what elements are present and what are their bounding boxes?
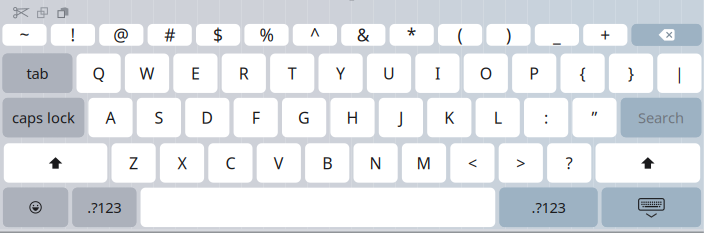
button[interactable]: .?123 [499,188,598,227]
staticText: N [370,152,382,173]
staticText: S [154,107,163,128]
staticText: ? [566,152,573,173]
button[interactable]: Z [111,143,156,183]
button[interactable]: T [270,53,314,93]
button[interactable]: # [148,24,192,46]
staticText: ^ [310,23,320,46]
button[interactable]: * [390,24,434,46]
button[interactable]: Hide keyboard [602,188,701,227]
button[interactable]: Shift [4,143,107,183]
button[interactable]: Paste [57,7,68,18]
staticText: & [357,23,370,46]
button[interactable]: $ [196,24,240,46]
button[interactable]: | [657,53,701,93]
button[interactable]: Delete [632,24,702,46]
staticText: X [177,152,186,173]
button[interactable]: @ [99,24,143,46]
staticText: ! [70,23,75,46]
staticText: C [225,152,235,173]
button[interactable]: Cut [14,7,37,18]
button[interactable]: H [330,98,375,137]
staticText: F [252,107,260,128]
button[interactable]: S [137,98,181,137]
staticText: D [201,107,213,128]
button[interactable]: X [160,143,204,183]
staticText: ” [591,107,597,128]
staticText: ~ [19,23,29,46]
staticText: # [164,23,175,46]
button[interactable]: & [341,24,385,46]
button[interactable]: < [450,143,494,183]
button[interactable]: tab [2,53,72,93]
staticText: G [298,107,310,128]
button[interactable]: D [185,98,229,137]
button[interactable]: Search [621,98,701,137]
button[interactable]: W [125,53,169,93]
button[interactable]: ) [486,24,531,46]
staticText: } [628,63,634,84]
button[interactable]: Emoji [3,188,68,227]
button[interactable]: ” [572,98,617,137]
staticText: ) [506,23,511,46]
staticText: ( [458,23,463,46]
staticText: > [516,152,525,173]
button[interactable]: V [257,143,301,183]
button[interactable]: R [222,53,266,93]
staticText: V [274,152,284,173]
staticText: + [600,23,610,46]
button[interactable]: Shift [595,143,700,183]
staticText: $ [213,23,223,46]
button[interactable]: _ [535,24,579,46]
button[interactable]: > [499,143,543,183]
staticText: .?123 [87,198,121,217]
button[interactable]: caps lock [3,98,84,137]
button[interactable]: C [208,143,252,183]
button[interactable]: ^ [293,24,337,46]
button[interactable]: G [282,98,326,137]
button[interactable]: .?123 [72,188,136,227]
staticText: Z [129,152,138,173]
staticText: I [435,63,440,84]
button[interactable]: } [609,53,653,93]
button[interactable]: A [88,98,133,137]
staticText: | [675,63,684,84]
button[interactable]: B [305,143,349,183]
button[interactable]: ~ [2,24,47,46]
staticText: T [288,63,297,84]
button[interactable]: M [402,143,446,183]
staticText: Search [638,108,684,127]
button[interactable]: { [560,53,605,93]
button[interactable]: Copy [37,7,57,18]
button[interactable]: P [512,53,556,93]
staticText: tab [26,63,48,83]
staticText: @ [113,23,129,46]
button[interactable]: I [415,53,459,93]
button[interactable]: N [353,143,398,183]
button[interactable]: O [464,53,508,93]
button[interactable]: : [524,98,568,137]
button[interactable]: ? [547,143,591,183]
button[interactable]: + [583,24,627,46]
button[interactable]: ! [51,24,95,46]
staticText: Q [93,63,105,84]
button[interactable]: J [379,98,423,137]
button[interactable]: L [476,98,520,137]
button[interactable]: K [427,98,471,137]
button[interactable]: Q [76,53,121,93]
button[interactable]: ( [438,24,482,46]
button[interactable]: U [367,53,411,93]
staticText: U [383,63,395,84]
staticText: P [529,63,539,84]
staticText: H [346,107,358,128]
button[interactable]: F [234,98,278,137]
staticText: O [480,63,492,84]
staticText: R [239,63,249,84]
staticText: J [399,107,403,128]
staticText: M [416,152,431,173]
button[interactable]: Y [318,53,363,93]
staticText: : [544,107,548,128]
button[interactable]: E [173,53,217,93]
staticText: Y [336,63,345,84]
button[interactable]: % [244,24,289,46]
